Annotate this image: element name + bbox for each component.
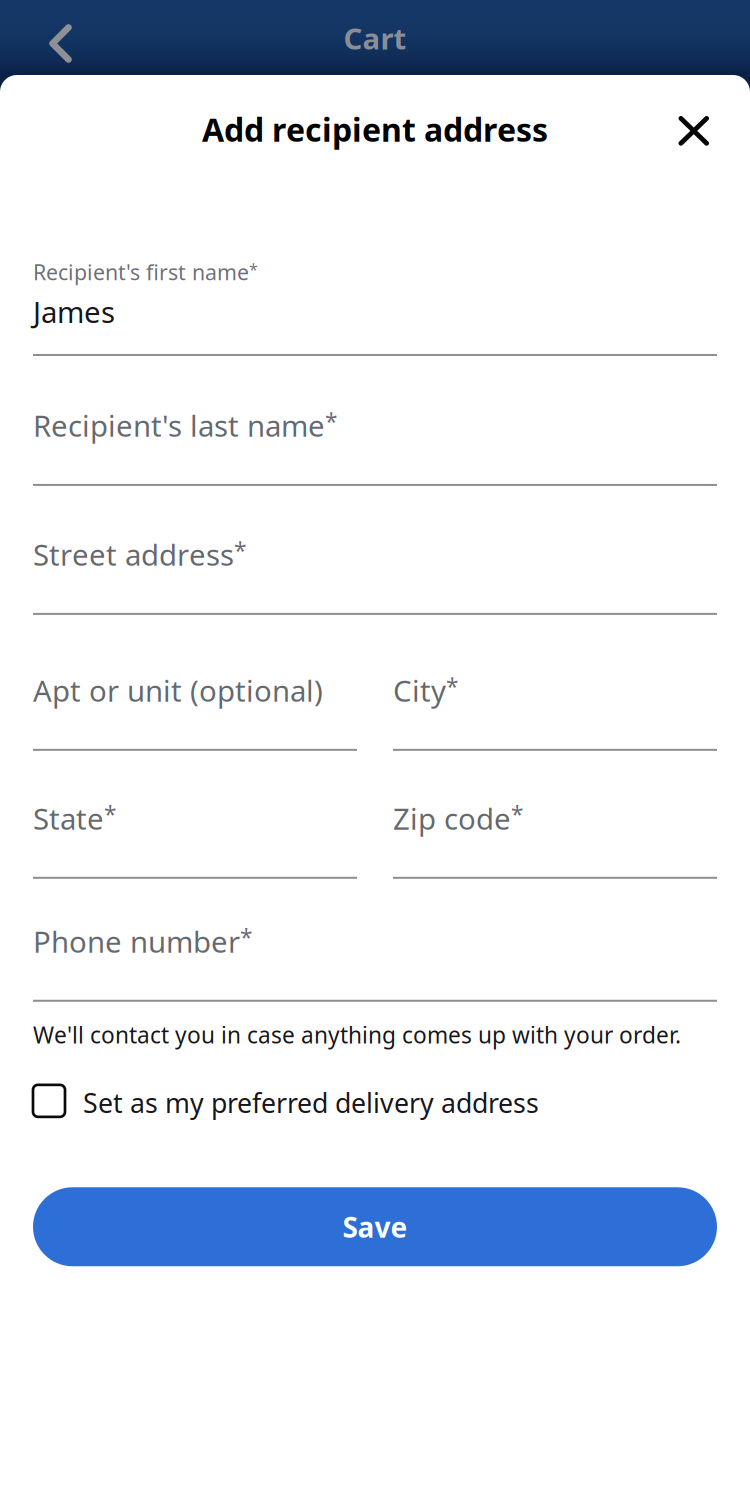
button[interactable]: City* bbox=[393, 671, 717, 751]
staticText: James bbox=[33, 292, 115, 331]
staticText: Save bbox=[342, 1208, 407, 1245]
button[interactable]: Set as my preferred delivery address bbox=[33, 1085, 717, 1120]
staticText: Set as my preferred delivery address bbox=[83, 1085, 539, 1120]
staticText: State* bbox=[33, 799, 116, 838]
staticText: Phone number* bbox=[33, 922, 252, 961]
staticText: City* bbox=[393, 671, 458, 710]
staticText: Street address* bbox=[33, 535, 246, 574]
button[interactable]: Recipient's first name* bbox=[33, 258, 717, 356]
button[interactable]: Apt or unit (optional) bbox=[33, 671, 357, 751]
staticText: Cart bbox=[343, 18, 406, 57]
staticText: We'll contact you in case anything comes… bbox=[33, 1020, 681, 1050]
button[interactable]: Back bbox=[0, 0, 98, 76]
staticText: Zip code* bbox=[393, 799, 523, 838]
button[interactable]: Phone number* bbox=[33, 922, 717, 1002]
button[interactable]: Save bbox=[33, 1187, 717, 1266]
button[interactable]: Recipient's last name* bbox=[33, 406, 717, 486]
button[interactable]: Street address* bbox=[33, 535, 717, 615]
button[interactable]: Zip code* bbox=[393, 799, 717, 879]
staticText: Apt or unit (optional) bbox=[33, 671, 323, 710]
button[interactable]: State* bbox=[33, 799, 357, 879]
staticText: Recipient's last name* bbox=[33, 406, 337, 445]
button[interactable]: Close bbox=[654, 108, 750, 160]
staticText: Add recipient address bbox=[202, 108, 548, 150]
staticText: Recipient's first name* bbox=[33, 258, 258, 286]
